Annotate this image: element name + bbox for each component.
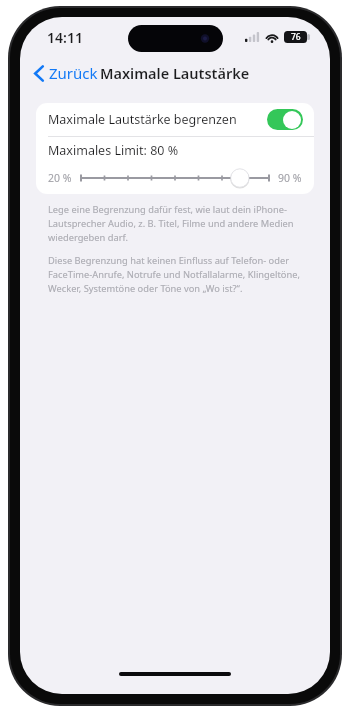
- staticText: 76: [291, 31, 301, 43]
- staticText: Diese Begrenzung hat keinen Einfluss auf…: [48, 254, 302, 294]
- staticText: Maximales Limit: 80 %: [48, 142, 179, 159]
- staticText: 90 %: [278, 171, 302, 185]
- staticText: Maximale Lautstärke begrenzen: [48, 111, 267, 128]
- button[interactable]: Lautstärkegrenze Schieberegler: [79, 166, 271, 190]
- staticText: 14:11: [47, 28, 83, 47]
- button[interactable]: Maximale Lautstärke begrenzen ein: [267, 109, 303, 130]
- staticText: Maximale Lautstärke: [100, 63, 250, 83]
- staticText: Lege eine Begrenzung dafür fest, wie lau…: [48, 203, 302, 243]
- staticText: Zurück: [49, 63, 98, 83]
- staticText: 20 %: [48, 171, 72, 185]
- button[interactable]: Zurück: [20, 59, 106, 87]
- button[interactable]: Maximale Lautstärke begrenzen: [36, 103, 314, 136]
